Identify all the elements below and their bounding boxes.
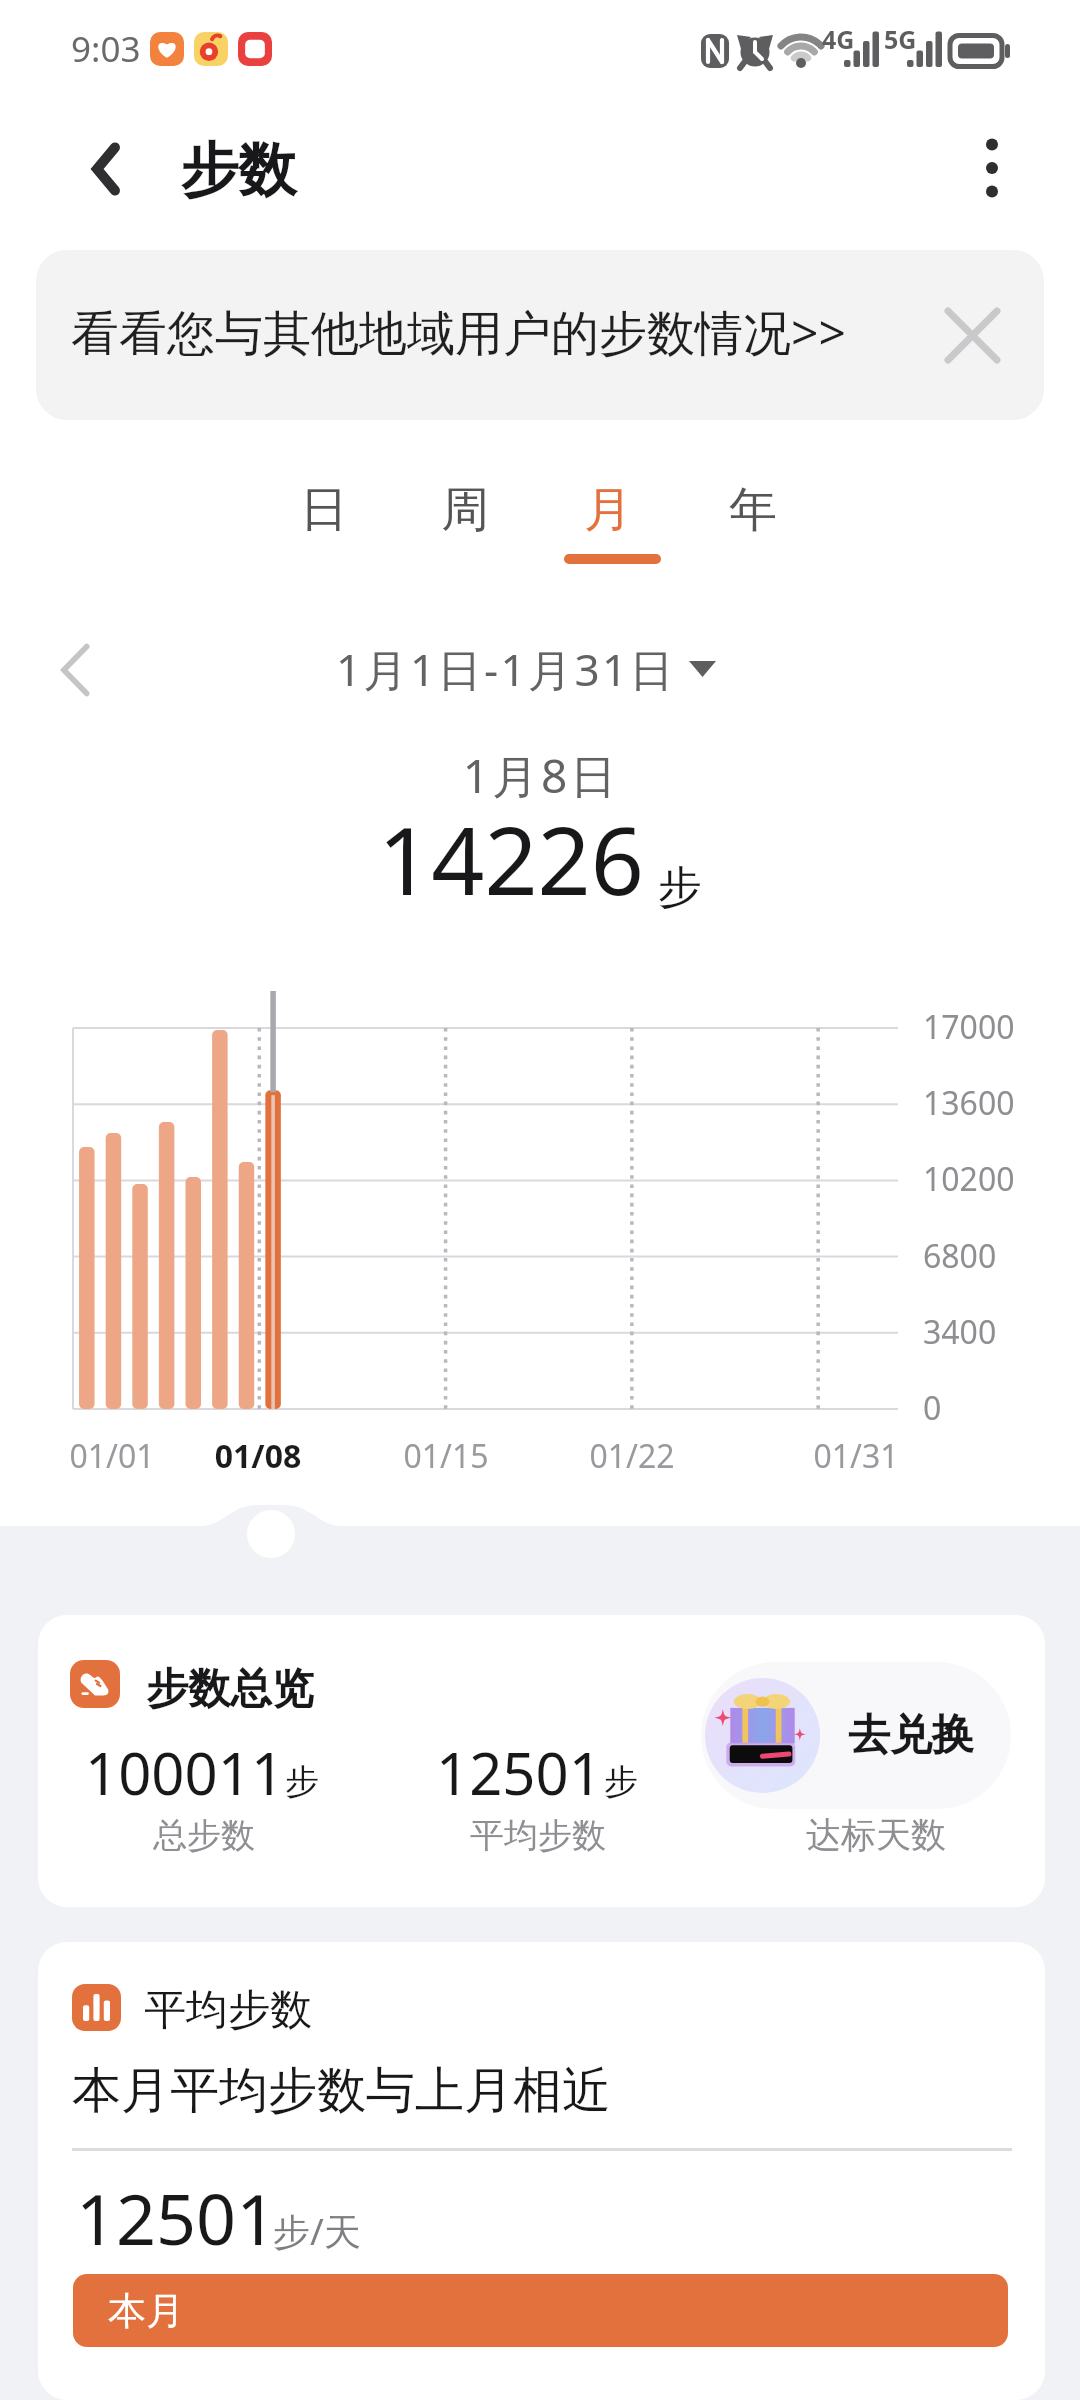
button[interactable]: 周	[395, 468, 535, 588]
staticText: 平均步数	[144, 1984, 312, 2037]
staticText: 步	[285, 1760, 319, 1803]
button[interactable]: 年	[683, 468, 823, 588]
button[interactable]: Close banner	[917, 280, 1027, 390]
staticText: 1月8日	[141, 744, 941, 807]
staticText: 平均步数	[338, 1814, 738, 1857]
staticText: 0	[923, 1386, 942, 1430]
button[interactable]: 平均步数	[38, 1942, 1045, 2400]
staticText: 本月	[108, 2287, 184, 2335]
staticText: 14226	[378, 796, 644, 923]
staticText: 10200	[923, 1157, 1015, 1201]
staticText: 步	[604, 1760, 638, 1803]
staticText: 5G	[884, 22, 917, 56]
staticText: 去兑换	[848, 1709, 974, 1762]
staticText: 01/22	[532, 1434, 732, 1478]
staticText: 3400	[923, 1310, 997, 1354]
staticText: 月	[584, 480, 632, 540]
staticText: 6800	[923, 1234, 997, 1278]
button[interactable]: 步数总览	[38, 1615, 1045, 1907]
staticText: 达标天数	[726, 1813, 1026, 1857]
staticText: 01/08	[158, 1434, 358, 1478]
button[interactable]: More options	[938, 108, 1046, 228]
staticText: 100011	[85, 1733, 285, 1812]
staticText: 日	[300, 480, 348, 540]
staticText: 9:03	[71, 25, 141, 73]
staticText: 本月平均步数与上月相近	[72, 2060, 611, 2122]
staticText: 01/31	[756, 1434, 956, 1478]
staticText: 总步数	[38, 1814, 404, 1857]
button[interactable]: 看看您与其他地域用户的步数情况>>	[36, 250, 1044, 420]
staticText: 01/15	[346, 1434, 546, 1478]
button[interactable]: 1月1日-1月31日	[336, 638, 716, 700]
staticText: 步/天	[273, 2205, 361, 2256]
staticText: 周	[441, 480, 489, 540]
button[interactable]: 本月	[73, 2274, 1008, 2347]
button[interactable]: 去兑换	[701, 1662, 1011, 1809]
staticText: 13600	[923, 1081, 1015, 1125]
staticText: 17000	[923, 1005, 1015, 1049]
button[interactable]: 日	[254, 468, 394, 588]
staticText: 步	[658, 860, 702, 915]
staticText: 4G	[822, 22, 855, 56]
staticText: 步数	[180, 134, 296, 207]
staticText: 步数总览	[146, 1663, 314, 1716]
button[interactable]: Back	[46, 109, 166, 229]
staticText: 12501	[76, 2170, 277, 2265]
staticText: 看看您与其他地域用户的步数情况>>	[71, 299, 846, 365]
button[interactable]: 月	[538, 468, 678, 588]
staticText: 年	[729, 480, 777, 540]
button[interactable]: Previous period	[29, 624, 121, 716]
staticText: 12501	[436, 1733, 602, 1812]
staticText: 1月1日-1月31日	[336, 639, 677, 699]
staticText: 01/01	[12, 1434, 212, 1478]
